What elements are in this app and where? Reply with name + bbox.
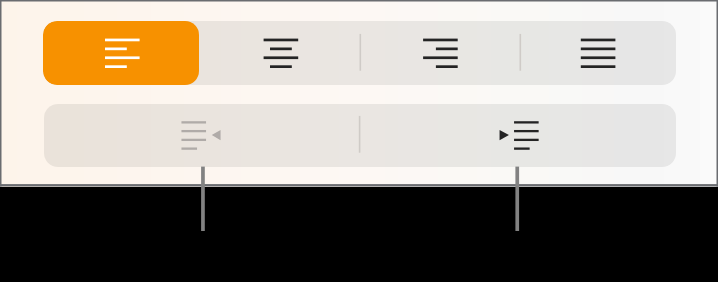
button[interactable]: Align centre	[201, 21, 360, 85]
button[interactable]: Align left	[43, 21, 201, 85]
button[interactable]: Align right	[360, 21, 519, 85]
button[interactable]: Justify	[519, 21, 675, 85]
button[interactable]: Increase indent	[360, 104, 676, 167]
button[interactable]: Decrease indent	[44, 104, 360, 167]
